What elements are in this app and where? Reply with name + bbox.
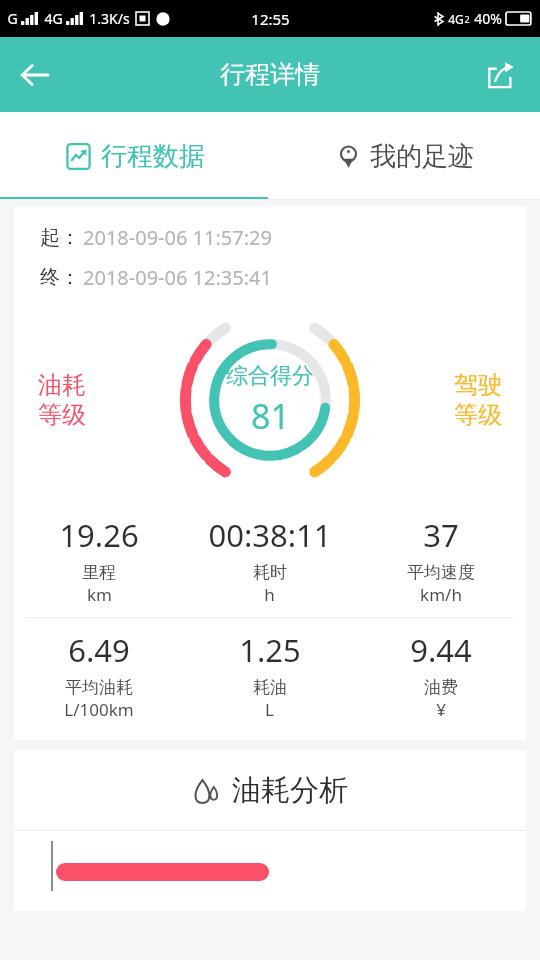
staticText: 耗时 xyxy=(253,562,287,583)
staticText: 平均速度 xyxy=(407,562,475,583)
staticText: 2 xyxy=(464,13,470,25)
staticText: 81 xyxy=(251,393,290,439)
button[interactable]: 我的足迹 xyxy=(270,112,540,200)
staticText: 里程 xyxy=(82,562,116,583)
staticText: 行程数据 xyxy=(101,140,205,173)
staticText: 油费 xyxy=(424,677,458,698)
staticText: 40% xyxy=(474,9,502,28)
staticText: 综合得分 xyxy=(226,362,314,390)
staticText: 平均油耗 xyxy=(65,677,133,698)
staticText: 4G xyxy=(448,11,464,27)
staticText: 起： xyxy=(40,225,80,250)
staticText: h xyxy=(264,583,275,606)
staticText: 19.26 xyxy=(59,514,139,556)
button[interactable]: Share xyxy=(474,48,528,102)
staticText: 2018-09-06 12:35:41 xyxy=(83,264,272,291)
staticText: 4G xyxy=(44,9,63,28)
staticText: ¥ xyxy=(436,698,446,721)
staticText: L xyxy=(265,698,274,721)
staticText: 行程详情 xyxy=(220,59,320,90)
staticText: 我的足迹 xyxy=(370,140,474,173)
staticText: 等级 xyxy=(454,400,502,430)
staticText: 9.44 xyxy=(410,629,472,671)
staticText: 终： xyxy=(40,265,80,290)
staticText: G xyxy=(7,9,18,28)
staticText: L/100km xyxy=(64,698,134,721)
staticText: 油耗分析 xyxy=(232,772,348,809)
staticText: km xyxy=(87,583,112,606)
staticText: 1.3K/s xyxy=(89,9,130,28)
button[interactable]: 行程数据 xyxy=(0,112,270,200)
staticText: 驾驶 xyxy=(454,370,502,400)
staticText: 37 xyxy=(423,514,459,556)
button[interactable]: Back xyxy=(6,46,64,104)
staticText: 1.25 xyxy=(239,629,301,671)
staticText: 6.49 xyxy=(68,629,130,671)
staticText: 00:38:11 xyxy=(208,514,332,556)
staticText: 2018-09-06 11:57:29 xyxy=(83,224,272,251)
staticText: 油耗 xyxy=(38,370,86,400)
staticText: 等级 xyxy=(38,400,86,430)
staticText: km/h xyxy=(420,583,462,606)
staticText: 耗油 xyxy=(253,677,287,698)
button[interactable]: 油耗分析 xyxy=(14,750,526,830)
staticText: 12:55 xyxy=(251,9,290,29)
